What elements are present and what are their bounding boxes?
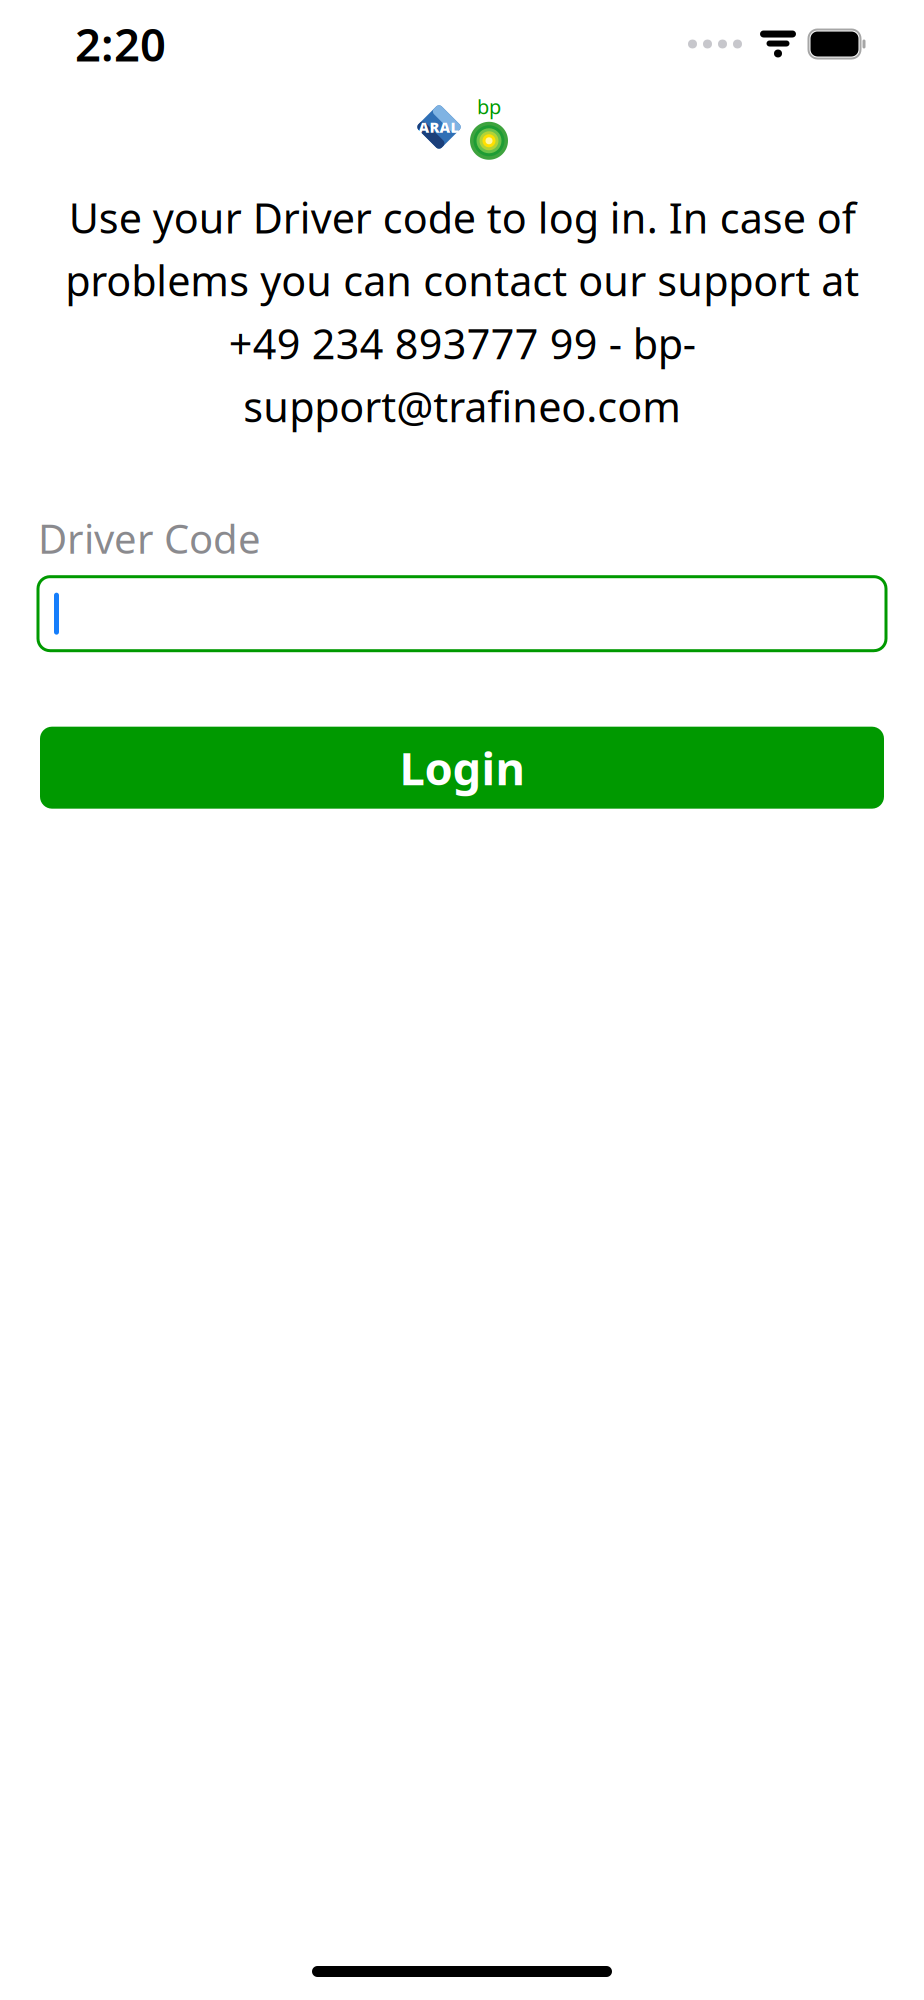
staticText: 2:20	[75, 14, 166, 74]
staticText: Use your Driver code to log in. In case …	[65, 190, 859, 434]
staticText: ARAL	[418, 117, 459, 137]
staticText: Login	[399, 738, 524, 798]
button[interactable]	[38, 577, 886, 651]
button[interactable]: Login	[40, 727, 884, 809]
staticText: Driver Code	[38, 512, 261, 565]
staticText: bp	[477, 93, 501, 120]
